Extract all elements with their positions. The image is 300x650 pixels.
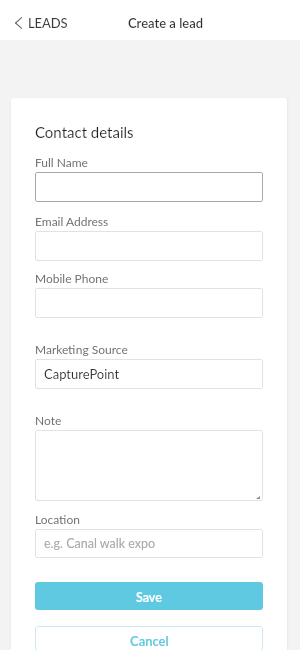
button[interactable]: Cancel xyxy=(35,626,263,650)
staticText: Mobile Phone xyxy=(35,271,109,285)
staticText: Save xyxy=(136,590,162,605)
button[interactable]: CapturePoint xyxy=(35,359,263,389)
button[interactable] xyxy=(35,172,263,202)
staticText: Contact details xyxy=(35,123,134,141)
staticText: Note xyxy=(35,413,62,427)
staticText: Marketing Source xyxy=(35,342,128,356)
staticText: Cancel xyxy=(130,633,169,649)
button[interactable] xyxy=(35,288,263,318)
button[interactable] xyxy=(35,430,263,501)
staticText: CapturePoint xyxy=(44,366,120,382)
staticText: Create a lead xyxy=(128,15,204,31)
button[interactable]: Save xyxy=(35,582,263,610)
button[interactable]: e.g. Canal walk expo xyxy=(35,529,263,558)
staticText: Email Address xyxy=(35,214,109,228)
staticText: Full Name xyxy=(35,155,88,169)
staticText: LEADS xyxy=(28,15,68,31)
button[interactable]: Back to leads xyxy=(0,9,78,37)
staticText: e.g. Canal walk expo xyxy=(44,536,156,551)
button[interactable] xyxy=(35,231,263,261)
staticText: Location xyxy=(35,512,81,526)
